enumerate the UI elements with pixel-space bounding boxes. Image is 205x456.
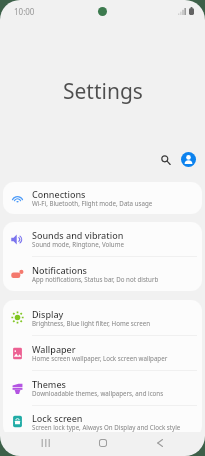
staticText: Themes [32, 378, 66, 390]
staticText: Display [32, 308, 64, 320]
staticText: Settings [63, 77, 143, 106]
button[interactable]: Account [177, 148, 200, 171]
button[interactable]: Wallpaper [3, 336, 202, 370]
staticText: Lock screen [32, 412, 83, 424]
button[interactable]: Themes [3, 371, 202, 405]
button[interactable]: Sounds and vibration [3, 222, 202, 256]
staticText: Wallpaper [32, 343, 76, 355]
button[interactable]: Display [3, 300, 202, 335]
staticText: App notifications, Status bar, Do not di… [32, 275, 159, 283]
button[interactable]: Connections [3, 182, 202, 214]
button[interactable]: Notifications [3, 257, 202, 291]
staticText: Wi-Fi, Bluetooth, Flight mode, Data usag… [32, 199, 153, 207]
button[interactable]: Back [148, 431, 172, 455]
staticText: Downloadable themes, wallpapers, and ico… [32, 389, 164, 397]
staticText: Home screen wallpaper, Lock screen wallp… [32, 354, 168, 362]
button[interactable]: Lock screen [3, 406, 202, 432]
staticText: Brightness, Blue light filter, Home scre… [32, 319, 151, 327]
staticText: Sounds and vibration [32, 229, 124, 241]
button[interactable]: Recents [33, 431, 57, 455]
staticText: Notifications [32, 264, 87, 276]
button[interactable]: Home [91, 431, 115, 455]
button[interactable]: Search [154, 148, 177, 171]
staticText: Connections [32, 188, 86, 200]
staticText: Screen lock type, Always On Display and … [32, 423, 181, 431]
staticText: Sound mode, Ringtone, Volume [32, 240, 124, 248]
staticText: 10:00 [14, 6, 35, 17]
